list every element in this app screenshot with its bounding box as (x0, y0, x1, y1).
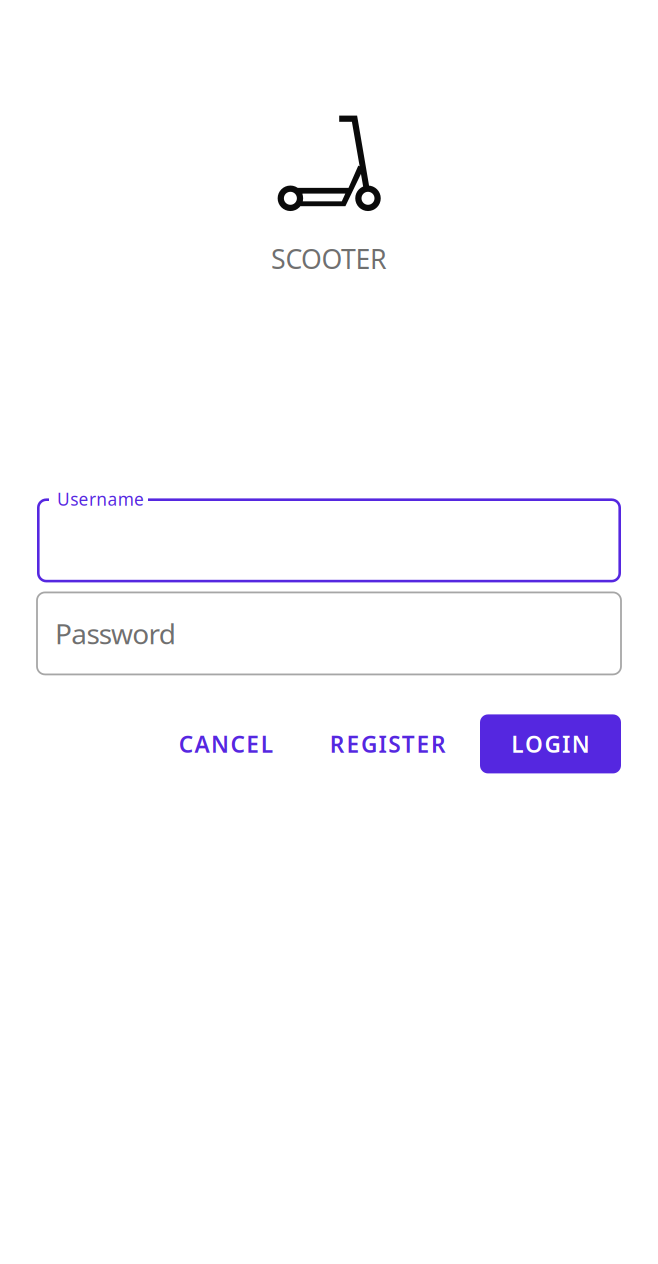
staticText: SCOOTER (271, 241, 387, 276)
button[interactable]: CANCEL (163, 714, 289, 773)
staticText: LOGIN (511, 729, 590, 759)
button[interactable]: REGISTER (314, 714, 462, 773)
button[interactable]: Username (37, 498, 621, 582)
staticText: CANCEL (179, 729, 273, 759)
staticText: REGISTER (330, 729, 446, 759)
button[interactable]: Password (37, 592, 621, 674)
button[interactable]: LOGIN (480, 714, 621, 773)
staticText: Username (57, 487, 144, 510)
staticText: Password (55, 615, 176, 652)
